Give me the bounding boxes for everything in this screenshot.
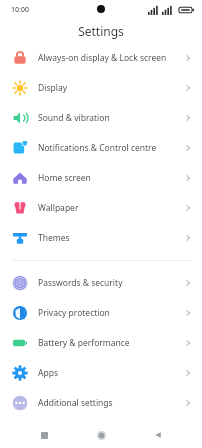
staticText: Display <box>38 82 176 94</box>
button[interactable]: Apps <box>0 358 202 388</box>
button[interactable]: Home screen <box>0 163 202 193</box>
staticText: Additional settings <box>38 397 176 409</box>
staticText: Passwords & security <box>38 277 176 289</box>
staticText: Apps <box>38 367 176 379</box>
staticText: Settings <box>78 23 124 39</box>
staticText: Themes <box>38 232 176 244</box>
staticText: Sound & vibration <box>38 112 176 124</box>
button[interactable]: Passwords & security <box>0 268 202 298</box>
staticText: Wallpaper <box>38 202 176 214</box>
button[interactable]: Sound & vibration <box>0 103 202 133</box>
button[interactable]: Notifications & Control centre <box>0 133 202 163</box>
button[interactable]: Battery & performance <box>0 328 202 358</box>
button[interactable]: Recents <box>31 422 57 448</box>
button[interactable]: Additional settings <box>0 388 202 418</box>
button[interactable]: Privacy protection <box>0 298 202 328</box>
staticText: 10:00 <box>11 5 29 15</box>
button[interactable]: Home <box>88 422 114 448</box>
button[interactable]: Back <box>145 422 171 448</box>
button[interactable]: Always-on display & Lock screen <box>0 43 202 73</box>
staticText: Home screen <box>38 172 176 184</box>
button[interactable]: Themes <box>0 223 202 253</box>
button[interactable]: Display <box>0 73 202 103</box>
staticText: Always-on display & Lock screen <box>38 52 176 64</box>
staticText: Battery & performance <box>38 337 176 349</box>
button[interactable]: Wallpaper <box>0 193 202 223</box>
staticText: Privacy protection <box>38 307 176 319</box>
staticText: Notifications & Control centre <box>38 142 176 154</box>
